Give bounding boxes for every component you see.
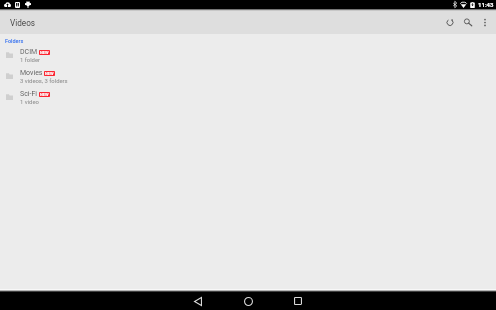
staticText: 1 folder	[20, 57, 41, 64]
button[interactable]: Movies	[0, 66, 496, 87]
staticText: NEW	[40, 92, 49, 97]
staticText: Sci-Fi	[20, 90, 38, 98]
staticText: DCIM	[20, 48, 38, 56]
staticText: Movies	[20, 69, 43, 77]
button[interactable]: Sci-Fi	[0, 87, 496, 108]
staticText: Videos	[10, 18, 36, 28]
button[interactable]: DCIM	[0, 45, 496, 66]
staticText: 3 videos, 3 folders	[20, 78, 68, 85]
button[interactable]: More options	[477, 11, 493, 34]
staticText: 1 video	[20, 99, 39, 106]
button[interactable]: Back	[183, 292, 213, 310]
staticText: NEW	[45, 71, 54, 76]
button[interactable]: Home	[233, 292, 263, 310]
button[interactable]: Refresh	[441, 11, 459, 34]
button[interactable]: Recent apps	[283, 292, 313, 310]
staticText: Folders	[5, 38, 24, 44]
staticText: 11:43	[478, 1, 494, 8]
staticText: NEW	[40, 50, 49, 55]
button[interactable]: Search	[459, 11, 477, 34]
